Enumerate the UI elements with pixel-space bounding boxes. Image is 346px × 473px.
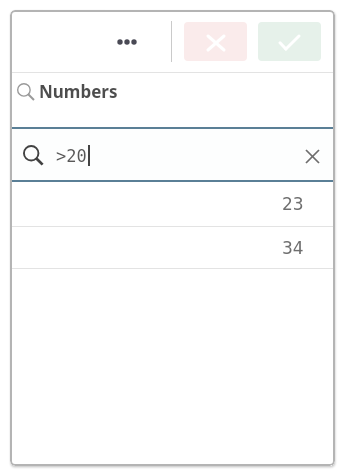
button[interactable]: Cancel selection (184, 22, 247, 61)
staticText: 34 (282, 238, 304, 258)
button[interactable]: 23 (10, 182, 335, 226)
button[interactable]: Clear search (301, 144, 323, 166)
button[interactable]: Confirm selection (258, 22, 321, 61)
staticText: >20 (56, 146, 87, 166)
button[interactable]: 34 (10, 227, 335, 268)
staticText: Numbers (39, 80, 118, 103)
button[interactable]: More options (107, 21, 147, 61)
staticText: 23 (282, 194, 304, 214)
